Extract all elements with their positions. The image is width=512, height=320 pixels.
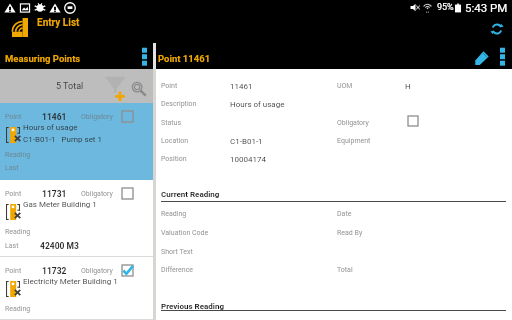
staticText: Reading xyxy=(5,151,31,159)
staticText: Entry List xyxy=(37,17,80,29)
staticText: 5 Total xyxy=(56,81,84,92)
staticText: Point xyxy=(5,190,22,198)
staticText: Hours of usage xyxy=(23,123,78,132)
button[interactable]: Measuring Points xyxy=(0,43,153,69)
button[interactable]: Filter xyxy=(103,74,130,102)
staticText: Total xyxy=(337,266,353,274)
staticText: H xyxy=(405,82,411,91)
staticText: Obligatory xyxy=(81,267,113,275)
staticText: UOM xyxy=(337,82,353,90)
staticText: Point 11461 xyxy=(158,53,211,64)
staticText: Electricity Meter Building 1 xyxy=(23,277,118,286)
staticText: Location xyxy=(161,137,189,145)
staticText: 11461 xyxy=(230,82,253,91)
button[interactable]: More options xyxy=(137,43,151,69)
staticText: Obligatory xyxy=(81,190,113,198)
button[interactable]: More options xyxy=(494,43,510,69)
staticText: Point xyxy=(5,267,22,275)
button[interactable]: Point xyxy=(0,103,153,180)
button[interactable]: Edit xyxy=(470,43,494,69)
staticText: Short Text xyxy=(161,248,193,256)
staticText: C1-B01-1 Pump set 1 xyxy=(23,135,102,144)
staticText: Reading xyxy=(5,228,31,236)
staticText: 11461 xyxy=(42,112,67,122)
staticText: Point xyxy=(161,82,178,90)
staticText: C1-B01-1 xyxy=(230,137,263,146)
staticText: 95% xyxy=(437,2,454,13)
staticText: Description xyxy=(161,100,197,108)
staticText: Measuring Points xyxy=(5,53,81,64)
staticText: Obligatory xyxy=(337,119,369,127)
staticText: 10004174 xyxy=(230,155,266,164)
staticText: Last xyxy=(5,318,19,320)
staticText: Last xyxy=(5,242,19,250)
button[interactable]: Point xyxy=(0,257,153,320)
staticText: Difference xyxy=(161,266,194,274)
staticText: 11731 xyxy=(42,189,67,199)
staticText: Valuation Code xyxy=(161,229,209,237)
staticText: 5:43 PM xyxy=(465,1,508,14)
staticText: Read By xyxy=(337,229,363,237)
staticText: 11732 xyxy=(42,266,67,276)
button[interactable]: Search xyxy=(131,81,147,97)
staticText: Hours of usage xyxy=(230,100,285,109)
button[interactable]: Point xyxy=(0,180,153,257)
staticText: Previous Reading xyxy=(161,302,224,311)
staticText: Reading xyxy=(161,210,187,218)
button[interactable]: Refresh xyxy=(486,18,507,39)
staticText: Obligatory xyxy=(81,113,113,121)
staticText: Status xyxy=(161,119,182,127)
staticText: Equipment xyxy=(337,137,371,145)
staticText: Reading xyxy=(5,305,31,313)
staticText: Point xyxy=(5,113,22,121)
staticText: Gas Meter Building 1 xyxy=(23,200,97,209)
staticText: Last xyxy=(5,164,19,172)
staticText: Current Reading xyxy=(161,190,220,199)
staticText: Position xyxy=(161,155,187,163)
staticText: Date xyxy=(337,210,352,218)
staticText: 42400 M3 xyxy=(40,241,79,251)
